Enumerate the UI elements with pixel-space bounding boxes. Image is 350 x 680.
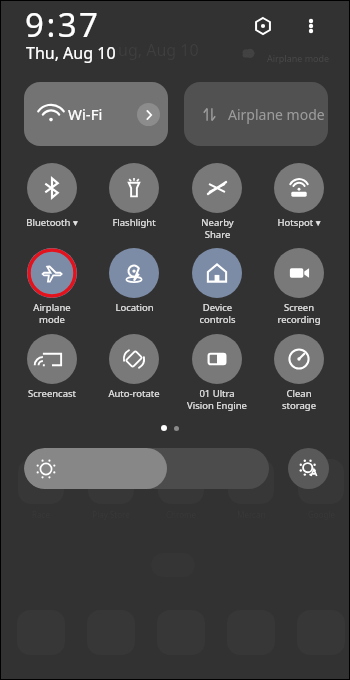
staticText: Location (115, 301, 154, 314)
staticText: Screen recording (277, 301, 321, 326)
button[interactable] (24, 448, 269, 489)
button[interactable]: Airplane mode (184, 82, 328, 146)
button[interactable]: More options (297, 12, 325, 40)
button[interactable]: Screencast (11, 334, 93, 412)
button[interactable]: Bluetooth ▾ (11, 163, 93, 241)
button[interactable]: Airplane mode (11, 248, 93, 326)
button[interactable]: Auto-rotate (93, 334, 175, 412)
staticText: Flashlight (112, 216, 156, 229)
button[interactable]: 01 Ultra Vision Engine (176, 334, 258, 412)
staticText: Screencast (28, 387, 76, 400)
button[interactable]: Nearby Share (176, 163, 258, 241)
button[interactable]: Flashlight (93, 163, 175, 241)
button[interactable]: Location (93, 248, 175, 326)
staticText: Airplane mode (228, 105, 325, 124)
staticText: Thu, Aug 10 (26, 42, 116, 64)
staticText: Airplane mode (267, 52, 330, 64)
button[interactable]: Screen recording (258, 248, 340, 326)
staticText: 01 Ultra Vision Engine (187, 387, 247, 412)
staticText: Wi-Fi (68, 104, 103, 124)
staticText: Clean storage (282, 387, 316, 412)
button[interactable]: Wi-Fi (24, 82, 168, 146)
staticText: ug, Aug 10 (118, 39, 199, 61)
button[interactable]: Device controls (176, 248, 258, 326)
staticText: Auto-rotate (108, 387, 160, 400)
staticText: Nearby Share (201, 216, 234, 241)
staticText: Bluetooth ▾ (26, 216, 78, 229)
button[interactable]: Settings (249, 12, 277, 40)
staticText: Hotspot ▾ (277, 216, 321, 229)
button[interactable]: Hotspot ▾ (258, 163, 340, 241)
button[interactable]: Clean storage (258, 334, 340, 412)
button[interactable]: Auto brightness (288, 448, 329, 489)
staticText: Airplane mode (33, 301, 71, 326)
staticText: Device controls (199, 301, 236, 326)
staticText: 9:37 (25, 2, 101, 47)
